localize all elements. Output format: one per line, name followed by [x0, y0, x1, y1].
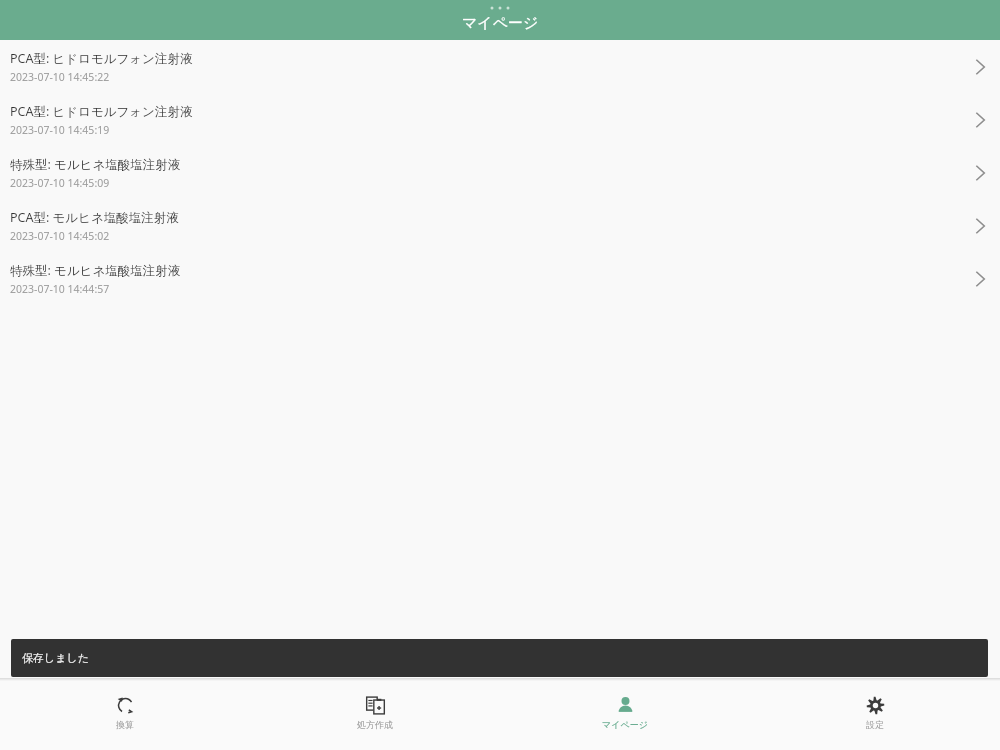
- staticText: PCA型: ヒドロモルフォン注射液: [10, 103, 193, 120]
- button[interactable]: 設定: [750, 678, 1000, 750]
- staticText: マイページ: [602, 719, 648, 730]
- other: 詳細を開く: [976, 112, 985, 128]
- button[interactable]: 特殊型: モルヒネ塩酸塩注射液: [0, 252, 1000, 305]
- staticText: 設定: [866, 719, 884, 730]
- button[interactable]: PCA型: ヒドロモルフォン注射液: [0, 40, 1000, 93]
- button[interactable]: PCA型: ヒドロモルフォン注射液: [0, 93, 1000, 146]
- button[interactable]: 保存しました: [11, 639, 988, 677]
- staticText: 換算: [116, 719, 134, 730]
- staticText: PCA型: モルヒネ塩酸塩注射液: [10, 209, 179, 226]
- staticText: マイページ: [462, 14, 539, 33]
- staticText: 2023-07-10 14:45:02: [10, 229, 110, 243]
- button[interactable]: 特殊型: モルヒネ塩酸塩注射液: [0, 146, 1000, 199]
- staticText: 特殊型: モルヒネ塩酸塩注射液: [10, 156, 181, 173]
- staticText: 2023-07-10 14:45:09: [10, 176, 110, 190]
- staticText: 2023-07-10 14:45:22: [10, 70, 110, 84]
- staticText: 保存しました: [22, 651, 90, 665]
- other: 詳細を開く: [976, 165, 985, 181]
- staticText: PCA型: ヒドロモルフォン注射液: [10, 50, 193, 67]
- other: 詳細を開く: [976, 271, 985, 287]
- button[interactable]: 換算: [0, 678, 250, 750]
- staticText: 2023-07-10 14:44:57: [10, 282, 110, 296]
- other: 詳細を開く: [976, 218, 985, 234]
- button[interactable]: 処方作成: [250, 678, 500, 750]
- button[interactable]: マイページ: [500, 678, 750, 750]
- staticText: 2023-07-10 14:45:19: [10, 123, 110, 137]
- staticText: 処方作成: [357, 719, 393, 730]
- other: 詳細を開く: [976, 59, 985, 75]
- button[interactable]: PCA型: モルヒネ塩酸塩注射液: [0, 199, 1000, 252]
- staticText: 特殊型: モルヒネ塩酸塩注射液: [10, 262, 181, 279]
